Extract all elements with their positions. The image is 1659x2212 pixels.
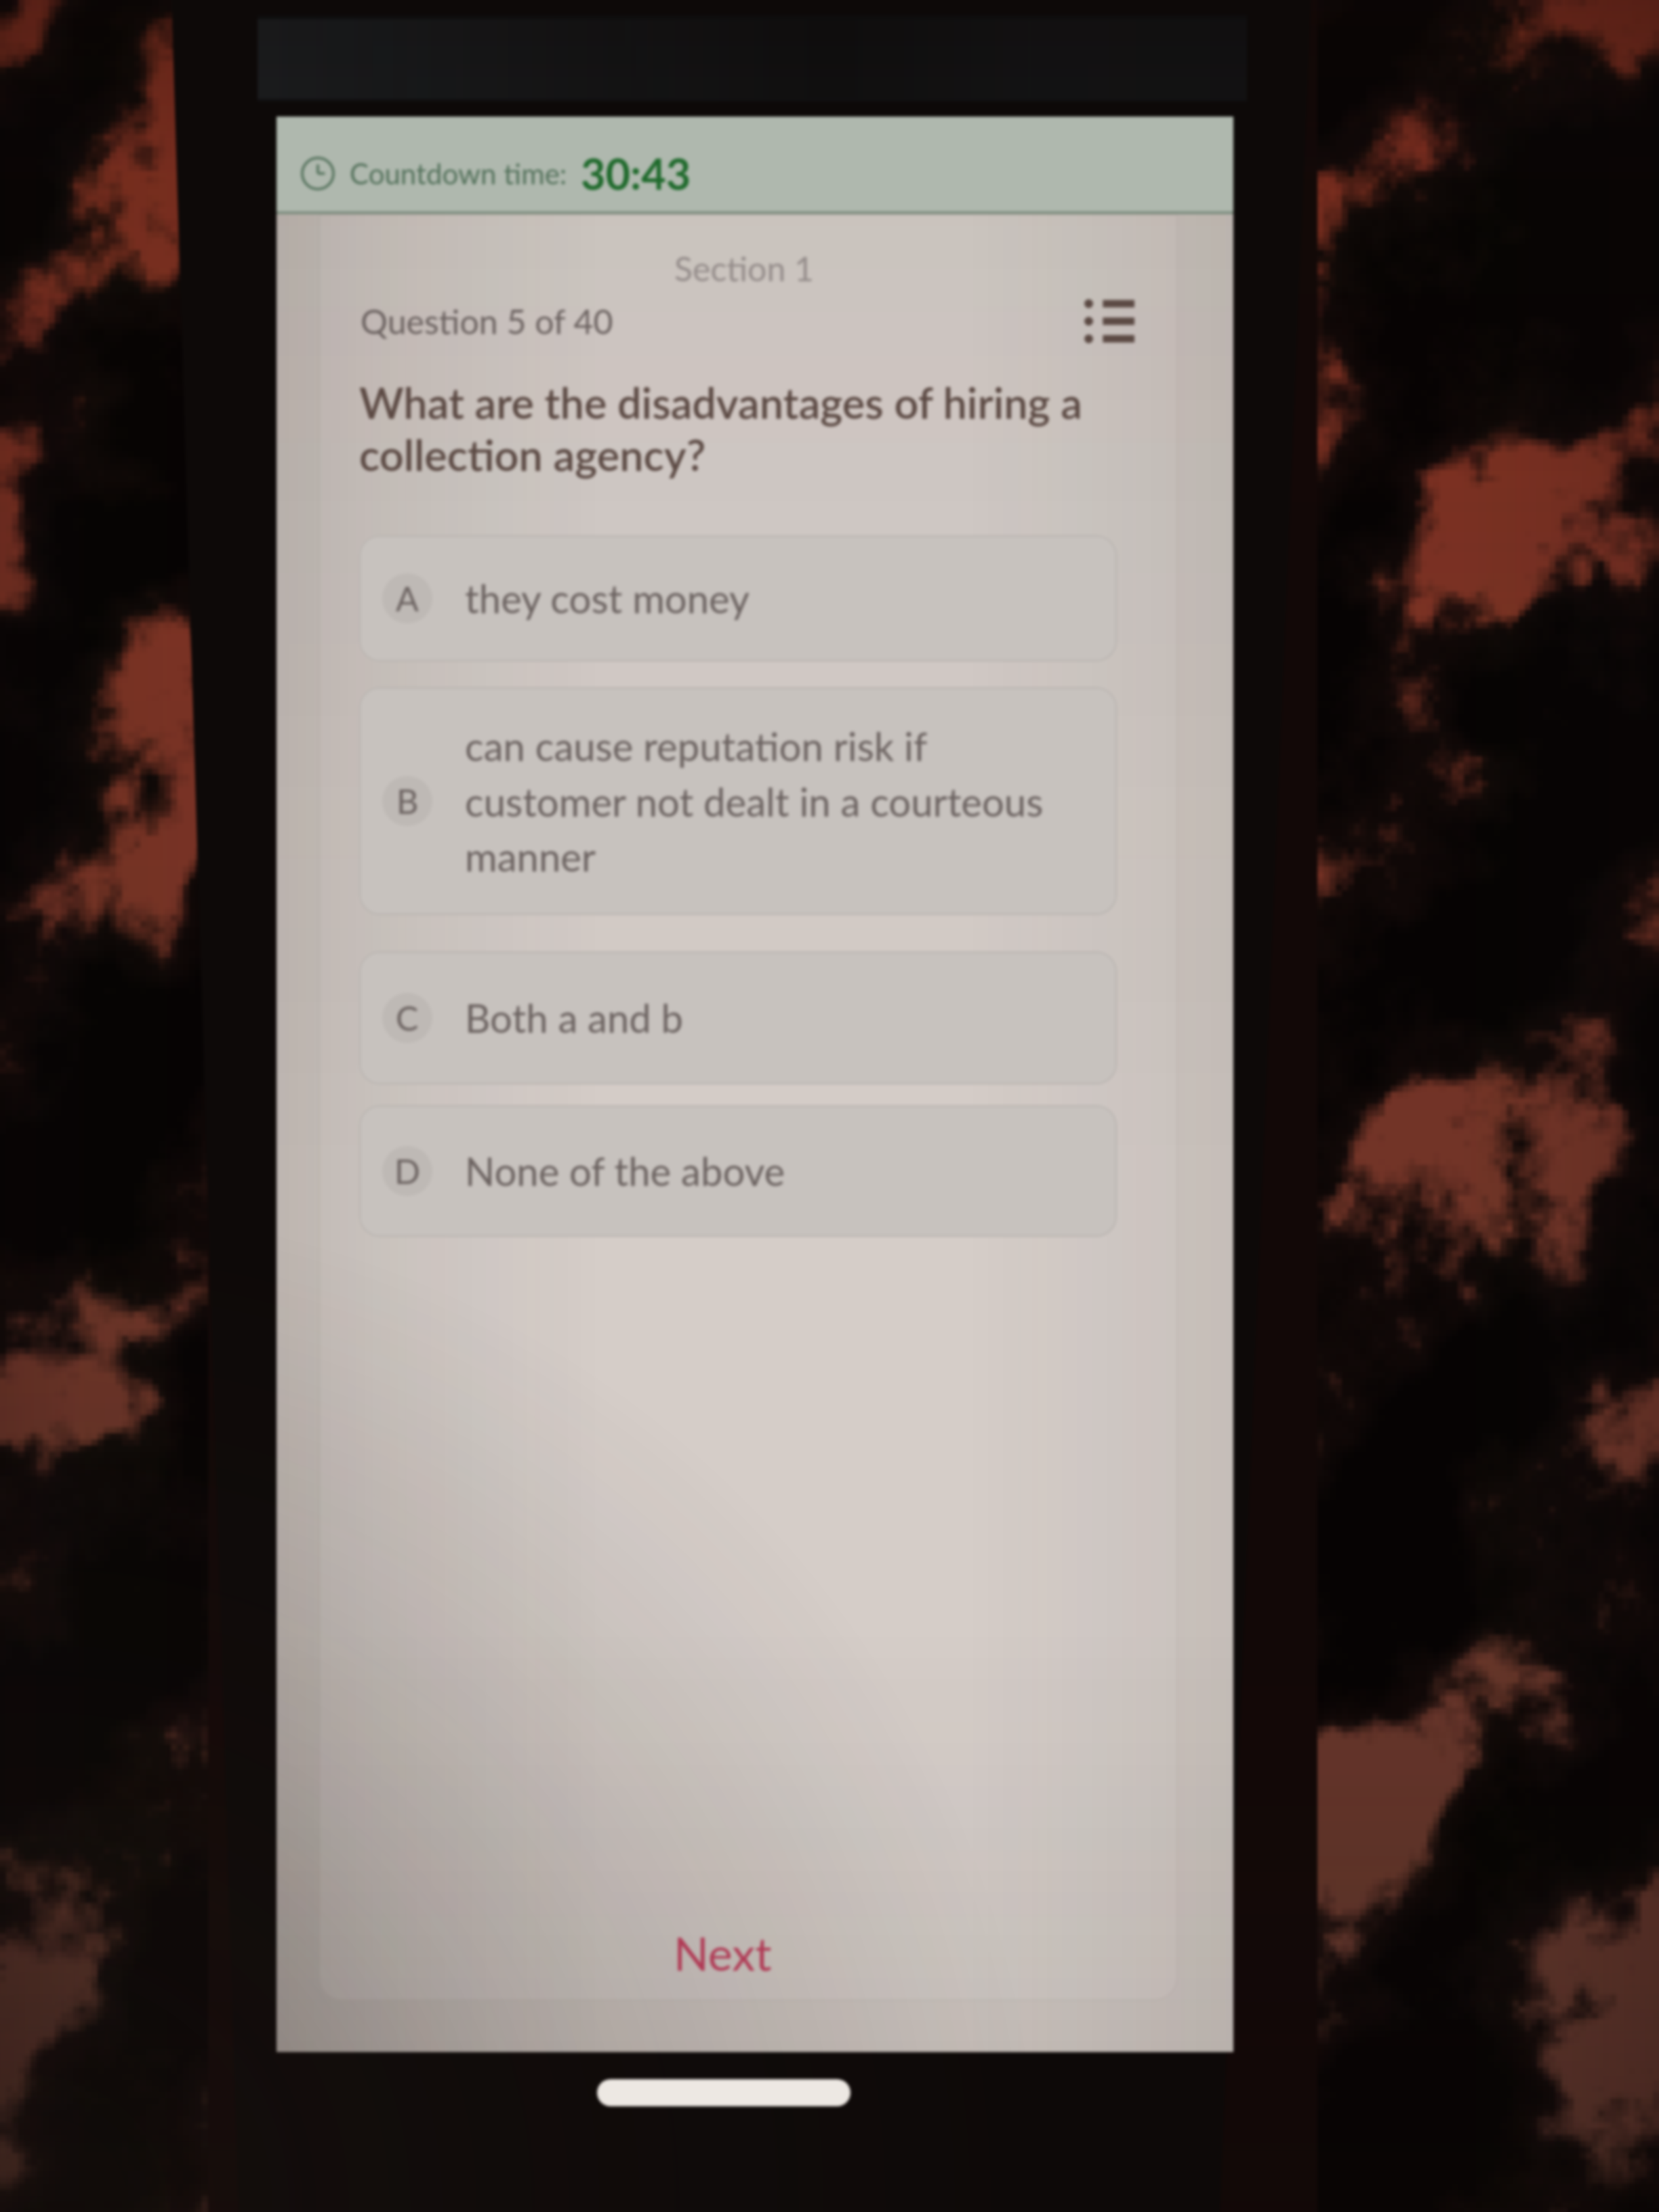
staticText: 30:43	[581, 148, 691, 199]
button[interactable]: B	[359, 687, 1117, 915]
staticText: Countdown time:	[350, 157, 567, 190]
staticText: A	[396, 578, 419, 619]
button[interactable]: D	[359, 1105, 1117, 1237]
button[interactable]: C	[359, 951, 1117, 1084]
button[interactable]: Next	[244, 1885, 1201, 2021]
staticText: they cost money	[465, 575, 1068, 622]
staticText: Question 5 of 40	[361, 301, 613, 342]
staticText: Section 1	[674, 248, 815, 289]
button[interactable]: Question list	[1072, 284, 1147, 359]
staticText: D	[394, 1151, 421, 1191]
staticText: can cause reputation risk if customer no…	[465, 722, 1068, 880]
button[interactable]: A	[359, 535, 1117, 661]
staticText: What are the disadvantages of hiring a c…	[359, 377, 1172, 480]
staticText: B	[396, 781, 419, 821]
staticText: Next	[674, 1925, 772, 1981]
staticText: Both a and b	[465, 994, 1068, 1042]
staticText: C	[396, 998, 419, 1038]
staticText: None of the above	[465, 1147, 1068, 1195]
